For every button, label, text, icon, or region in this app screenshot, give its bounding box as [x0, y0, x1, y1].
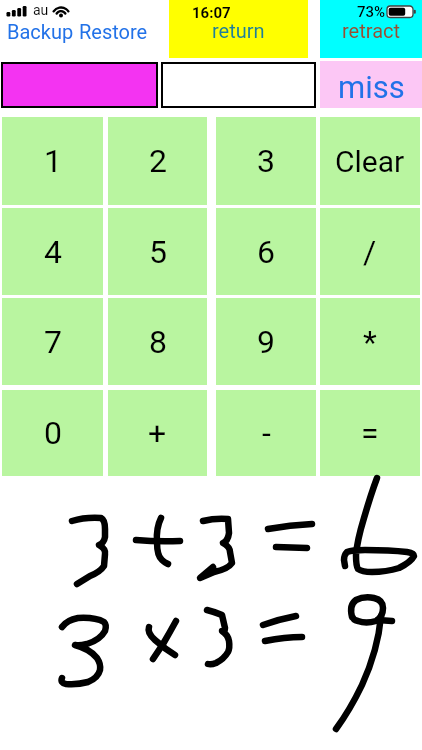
- button[interactable]: return: [169, 0, 308, 58]
- button[interactable]: 7: [2, 298, 103, 385]
- button[interactable]: 3: [216, 117, 316, 205]
- staticText: au: [33, 2, 49, 18]
- button[interactable]: 2: [108, 117, 207, 205]
- button[interactable]: /: [320, 208, 420, 295]
- button[interactable]: *: [320, 298, 420, 385]
- staticText: return: [212, 19, 265, 42]
- staticText: /: [363, 233, 377, 271]
- staticText: =: [361, 414, 379, 452]
- button[interactable]: =: [320, 390, 420, 476]
- button[interactable]: -: [216, 390, 316, 476]
- staticText: Clear: [335, 144, 405, 179]
- staticText: 5: [149, 233, 167, 271]
- staticText: +: [148, 414, 167, 452]
- button[interactable]: 6: [216, 208, 316, 295]
- staticText: retract: [342, 19, 401, 42]
- button[interactable]: 9: [216, 298, 316, 385]
- staticText: 73%: [357, 3, 386, 21]
- button[interactable]: Clear: [320, 117, 420, 205]
- staticText: miss: [338, 69, 405, 105]
- button[interactable]: 0: [2, 390, 103, 476]
- button[interactable]: Backup: [7, 20, 74, 43]
- staticText: 7: [44, 323, 62, 361]
- button[interactable]: 4: [2, 208, 103, 295]
- staticText: 16:07: [192, 4, 231, 22]
- staticText: *: [363, 323, 377, 361]
- staticText: 2: [149, 142, 167, 180]
- button[interactable]: +: [108, 390, 207, 476]
- button[interactable]: miss: [320, 61, 422, 108]
- button[interactable]: [161, 62, 316, 108]
- button[interactable]: 5: [108, 208, 207, 295]
- staticText: 4: [44, 233, 62, 271]
- staticText: 1: [44, 142, 62, 180]
- staticText: 3: [257, 142, 275, 180]
- button[interactable]: Restore: [79, 20, 148, 43]
- staticText: 6: [257, 233, 275, 271]
- button[interactable]: retract: [320, 0, 422, 58]
- staticText: 8: [149, 323, 167, 361]
- button[interactable]: [1, 62, 158, 108]
- staticText: 9: [257, 323, 275, 361]
- button[interactable]: 8: [108, 298, 207, 385]
- staticText: 0: [44, 414, 62, 452]
- staticText: -: [262, 414, 271, 452]
- button[interactable]: 1: [2, 117, 103, 205]
